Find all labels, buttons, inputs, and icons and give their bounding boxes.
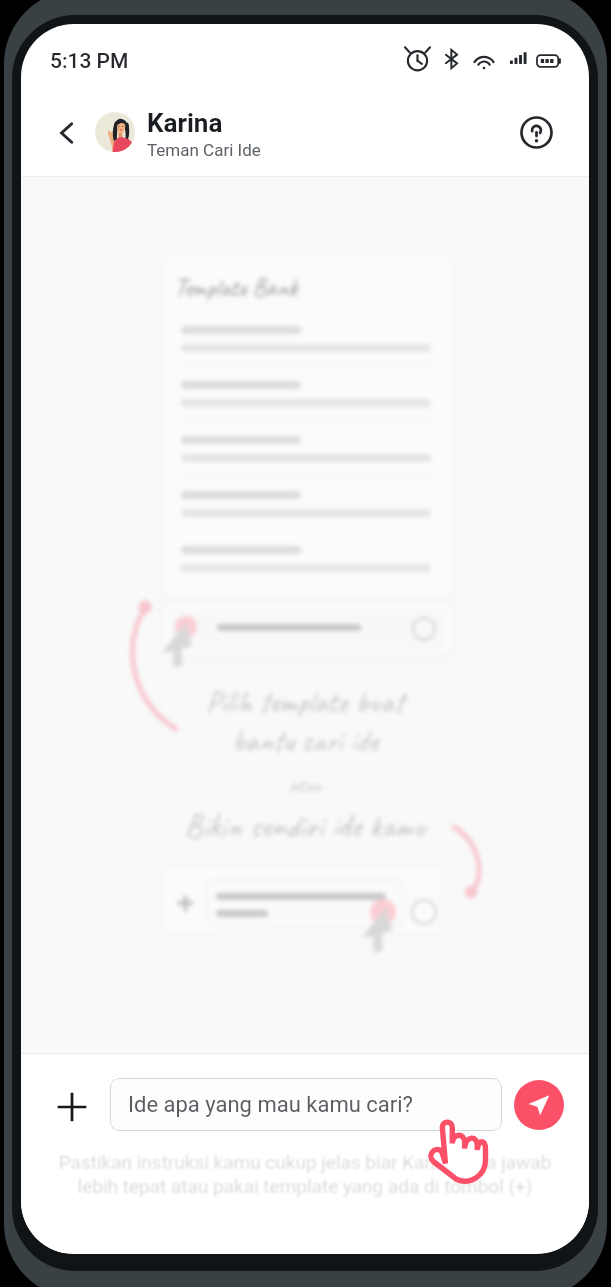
staticText: Pastikan instruksi kamu cukup jelas biar… <box>21 1151 589 1198</box>
button[interactable]: Send <box>514 1080 564 1130</box>
staticText: 5:13 PM <box>50 49 129 74</box>
button[interactable]: Back <box>48 115 84 151</box>
staticText: Bikin sendiri ide kamu <box>21 805 589 847</box>
button[interactable]: Ide apa yang mau kamu cari? <box>110 1078 502 1131</box>
staticText: Teman Cari Ide <box>147 140 261 160</box>
button[interactable]: Help <box>515 111 557 153</box>
staticText: Pilih template buat bantu cari ide <box>21 682 589 760</box>
button[interactable]: Add <box>49 1084 94 1129</box>
staticText: Karina <box>147 108 223 138</box>
staticText: Template Bank <box>175 272 297 304</box>
staticText: Ide apa yang mau kamu cari? <box>128 1092 413 1118</box>
